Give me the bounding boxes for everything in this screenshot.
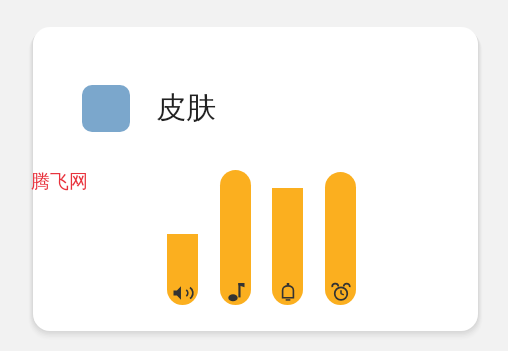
staticText: 皮肤 [156,89,216,127]
button[interactable]: 皮肤颜色 [82,85,130,132]
button[interactable]: 皮肤 [156,89,216,127]
staticText: 腾飞网 [31,170,88,194]
